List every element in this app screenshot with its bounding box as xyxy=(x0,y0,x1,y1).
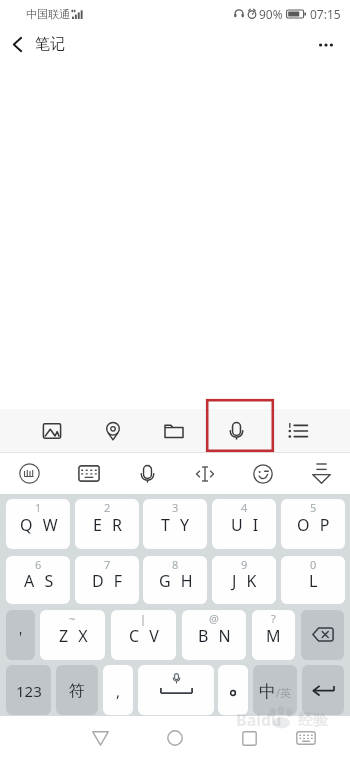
staticText: /英 xyxy=(276,685,292,700)
staticText: ? xyxy=(271,611,276,626)
button[interactable]: Home xyxy=(153,716,197,758)
staticText: O P xyxy=(297,514,333,536)
staticText: 0 xyxy=(310,557,317,572)
staticText: 中 xyxy=(259,681,276,702)
button[interactable]: 6 xyxy=(6,556,70,604)
staticText: , xyxy=(116,681,121,701)
button[interactable]: 123 xyxy=(6,665,51,715)
button[interactable]: 8 xyxy=(143,556,207,604)
button[interactable]: Emoji xyxy=(234,453,292,494)
button[interactable]: Move cursor xyxy=(176,453,234,494)
button[interactable] xyxy=(138,665,214,715)
staticText: @ xyxy=(209,611,219,626)
button[interactable]: 3 xyxy=(143,499,207,549)
staticText: Q W xyxy=(20,514,61,536)
button[interactable]: Voice input xyxy=(205,409,267,452)
staticText: 符 xyxy=(69,681,85,701)
staticText: 9 xyxy=(241,557,248,572)
staticText: 笔记 xyxy=(35,35,65,54)
staticText: 5 xyxy=(310,500,317,515)
button[interactable]: Back xyxy=(0,28,35,60)
staticText: 3 xyxy=(172,500,179,515)
staticText: 中国联通 xyxy=(26,7,70,21)
staticText: ' xyxy=(19,627,23,646)
staticText: D F xyxy=(92,570,126,592)
button[interactable]: 符 xyxy=(56,665,98,715)
staticText: T Y xyxy=(161,514,193,536)
staticText: 经验 xyxy=(298,711,328,730)
staticText: Z X xyxy=(59,625,91,647)
button[interactable]: ? xyxy=(252,610,295,660)
button[interactable]: ' xyxy=(6,610,35,660)
button[interactable]: Checklist xyxy=(267,409,329,452)
button[interactable]: Switch input method xyxy=(286,716,326,758)
staticText: M xyxy=(266,625,281,647)
button[interactable]: More options xyxy=(306,28,350,60)
button[interactable]: ~ xyxy=(40,610,105,660)
button[interactable]: 0 xyxy=(281,556,345,604)
button[interactable]: 中 xyxy=(253,665,297,715)
staticText: | xyxy=(140,611,147,626)
staticText: 4 xyxy=(241,500,248,515)
button[interactable]: Insert image xyxy=(21,409,82,452)
button[interactable]: 2 xyxy=(75,499,139,549)
button[interactable]: | xyxy=(111,610,176,660)
staticText: 2 xyxy=(104,500,111,515)
staticText: J K xyxy=(232,570,260,592)
button[interactable] xyxy=(301,610,344,660)
staticText: 7 xyxy=(104,557,111,572)
button[interactable]: @ xyxy=(182,610,246,660)
staticText: 90% xyxy=(259,6,283,22)
button[interactable] xyxy=(302,665,344,715)
button[interactable]: 5 xyxy=(281,499,345,549)
staticText: B N xyxy=(198,625,234,647)
button[interactable]: Location xyxy=(82,409,143,452)
button[interactable]: Back xyxy=(78,716,122,758)
staticText: L xyxy=(309,570,321,592)
button[interactable]: Hide keyboard xyxy=(292,453,350,494)
button[interactable]: Voice input xyxy=(118,453,176,494)
button[interactable]: Attach file xyxy=(143,409,205,452)
staticText: A S xyxy=(24,570,57,592)
button[interactable]: , xyxy=(103,665,133,715)
button[interactable]: 1 xyxy=(6,499,70,549)
button[interactable]: 9 xyxy=(212,556,276,604)
staticText: U I xyxy=(231,514,262,536)
staticText: 1 xyxy=(35,500,42,515)
staticText: 6 xyxy=(35,557,42,572)
button[interactable]: 7 xyxy=(75,556,139,604)
staticText: G H xyxy=(159,570,196,592)
button[interactable]: Recent apps xyxy=(227,716,271,758)
staticText: C V xyxy=(129,625,162,647)
staticText: E R xyxy=(93,514,126,536)
staticText: Baidu xyxy=(236,709,282,731)
staticText: 8 xyxy=(172,557,179,572)
staticText: 07:15 xyxy=(310,6,341,22)
button[interactable]: Keyboard layout xyxy=(59,453,118,494)
button[interactable] xyxy=(218,665,248,715)
button[interactable]: Input method xyxy=(0,453,59,494)
staticText: ~ xyxy=(69,611,76,626)
button[interactable]: 4 xyxy=(212,499,276,549)
staticText: 123 xyxy=(16,681,42,701)
